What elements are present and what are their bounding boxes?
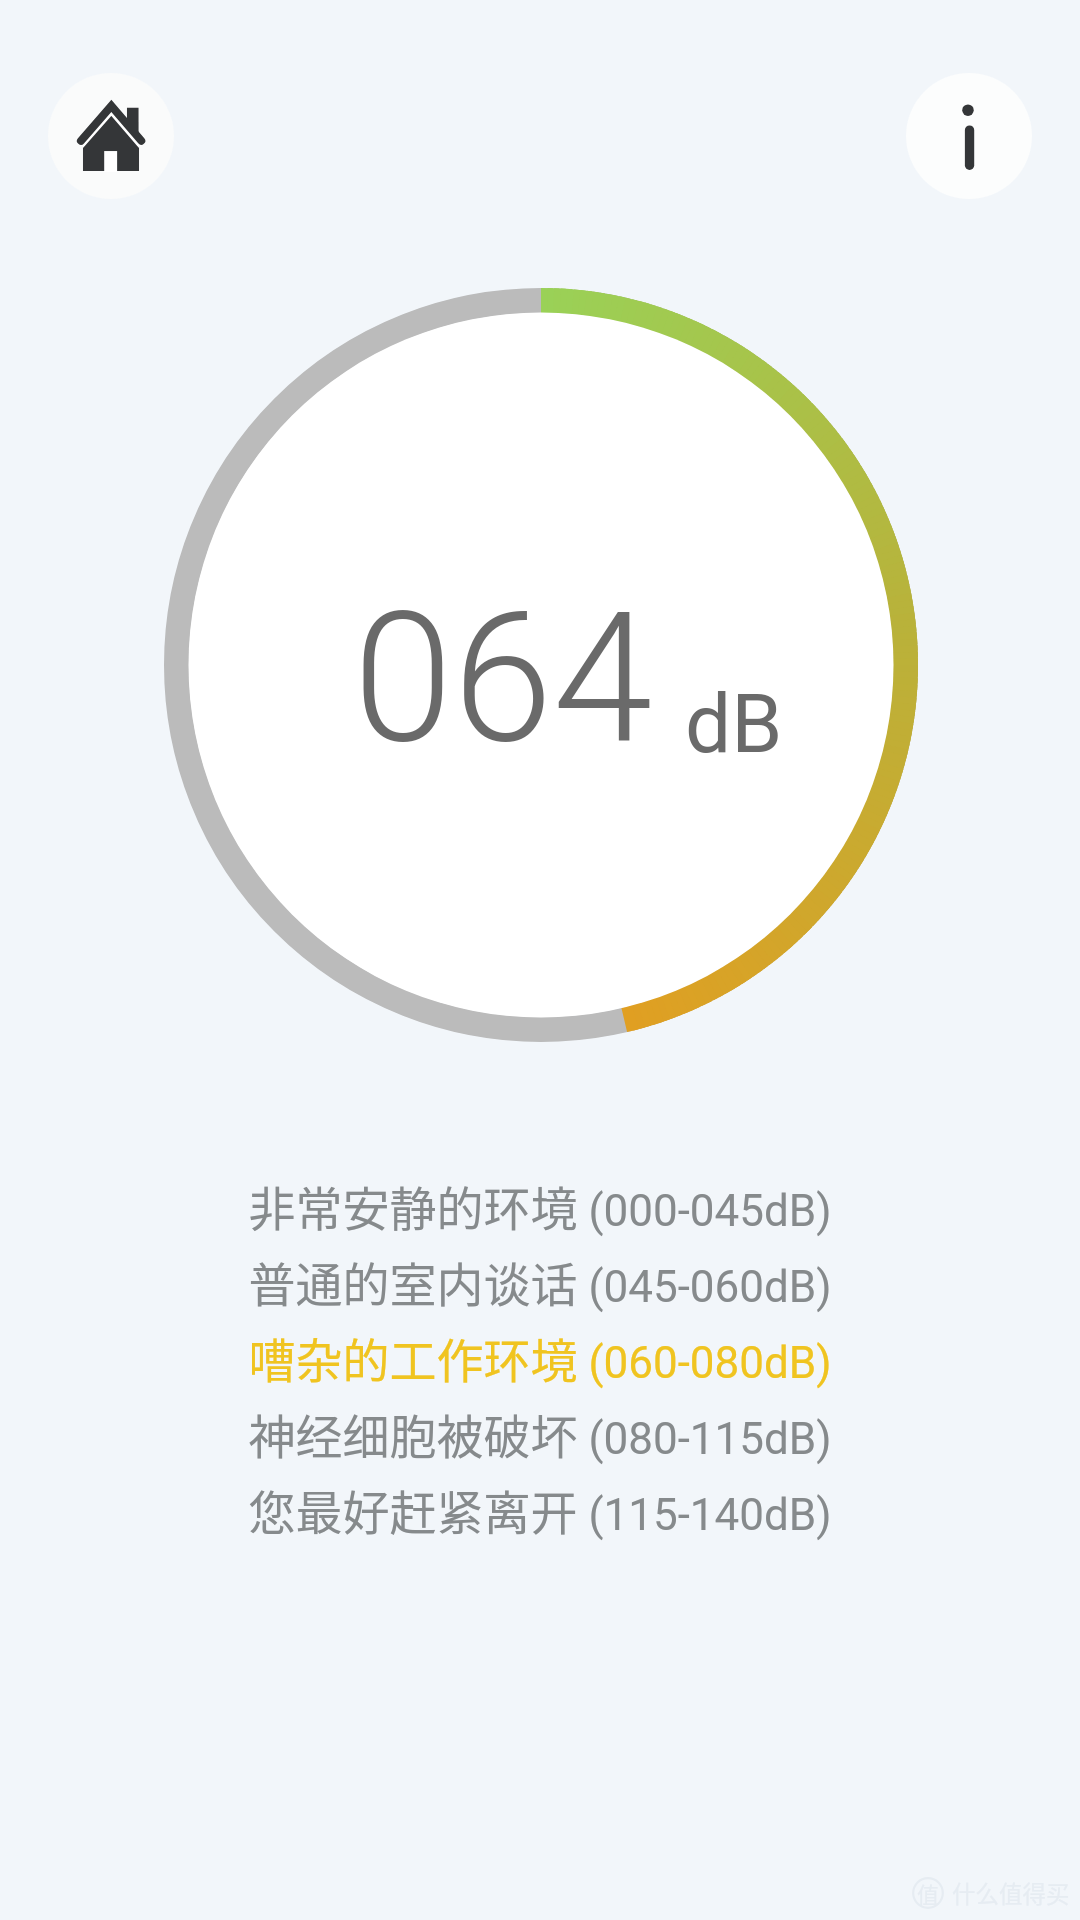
staticText: 非常安静的环境 (000-045dB) <box>248 1171 832 1239</box>
button[interactable]: 神经细胞被破坏 (080-115dB) <box>248 1395 832 1471</box>
staticText: dB <box>685 676 783 772</box>
staticText: 值 <box>917 1877 940 1909</box>
button[interactable]: 非常安静的环境 (000-045dB) <box>248 1167 832 1243</box>
button[interactable]: Info <box>906 73 1032 199</box>
button[interactable]: 普通的室内谈话 (045-060dB) <box>248 1243 832 1319</box>
staticText: 您最好赶紧离开 (115-140dB) <box>248 1475 832 1543</box>
button[interactable]: Home <box>48 73 174 199</box>
staticText: 嘈杂的工作环境 (060-080dB) <box>248 1323 832 1391</box>
staticText: 064 <box>353 573 653 784</box>
staticText: 普通的室内谈话 (045-060dB) <box>248 1247 832 1315</box>
button[interactable]: 您最好赶紧离开 (115-140dB) <box>248 1471 832 1547</box>
button[interactable]: 嘈杂的工作环境 (060-080dB) <box>248 1319 832 1395</box>
staticText: 什么值得买 <box>952 1876 1070 1910</box>
staticText: 神经细胞被破坏 (080-115dB) <box>248 1399 832 1467</box>
